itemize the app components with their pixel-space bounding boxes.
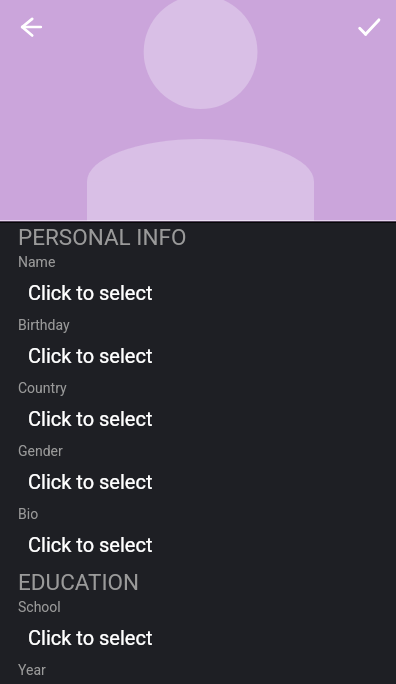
button[interactable]: Year — [0, 662, 396, 684]
staticText: School — [18, 599, 61, 615]
staticText: PERSONAL INFO — [18, 224, 187, 250]
staticText: Click to select — [28, 533, 153, 556]
staticText: Click to select — [28, 407, 153, 430]
button[interactable]: School — [0, 599, 396, 662]
staticText: EDUCATION — [18, 569, 140, 595]
staticText: Country — [18, 380, 67, 396]
staticText: Click to select — [28, 470, 153, 493]
staticText: Click to select — [28, 344, 153, 367]
button[interactable]: Bio — [0, 506, 396, 569]
button[interactable]: Country — [0, 380, 396, 443]
button[interactable]: Birthday — [0, 317, 396, 380]
staticText: Birthday — [18, 317, 70, 333]
button[interactable]: Save profile — [341, 3, 389, 51]
button[interactable]: Navigate back — [7, 3, 55, 51]
staticText: Click to select — [28, 281, 153, 304]
staticText: Gender — [18, 443, 63, 459]
staticText: Click to select — [28, 626, 153, 649]
staticText: Bio — [18, 506, 39, 522]
staticText: Year — [18, 662, 46, 678]
button[interactable]: Name — [0, 254, 396, 317]
button[interactable]: Gender — [0, 443, 396, 506]
staticText: Name — [18, 254, 56, 270]
